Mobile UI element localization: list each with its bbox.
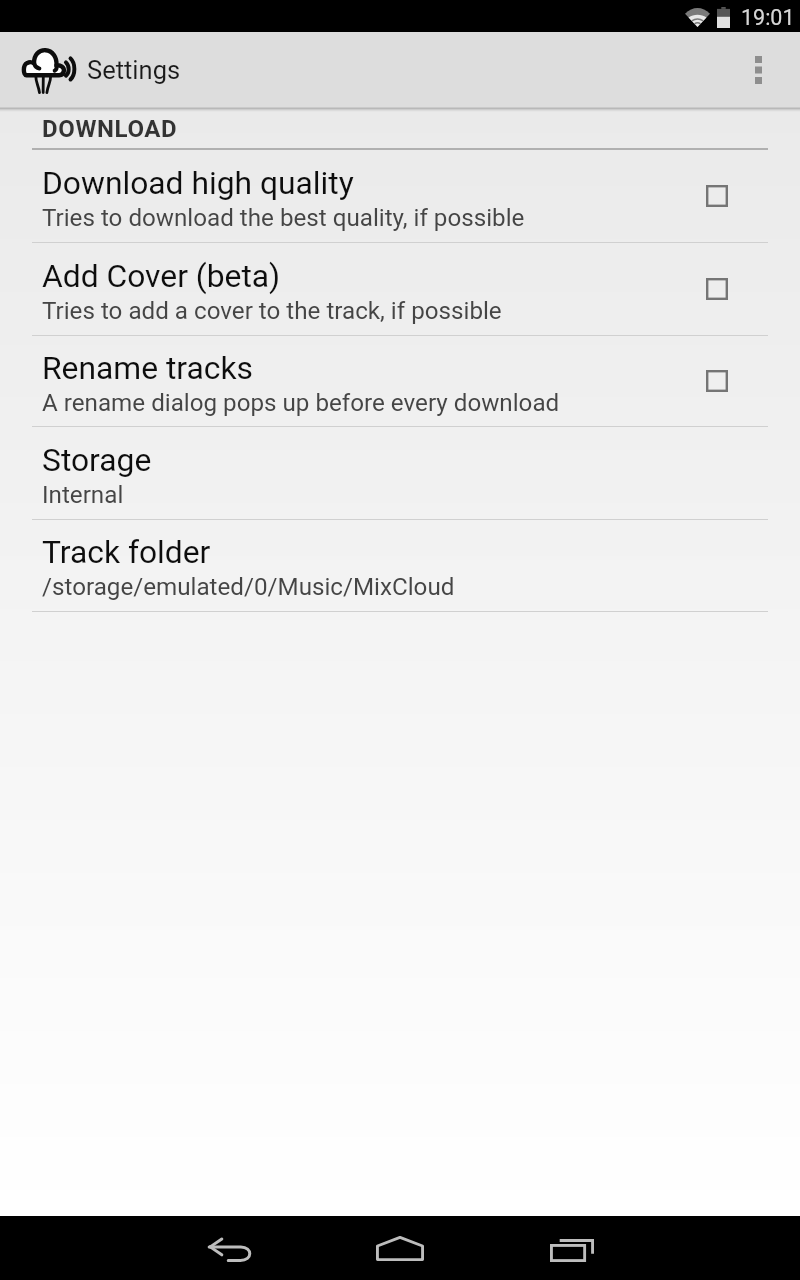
staticText: Tries to add a cover to the track, if po… [42, 297, 502, 325]
button[interactable]: Download high quality [0, 150, 800, 242]
staticText: /storage/emulated/0/Music/MixCloud [42, 573, 455, 601]
button[interactable]: Home [314, 1216, 486, 1280]
staticText: DOWNLOAD [42, 115, 178, 143]
staticText: Download high quality [42, 164, 354, 201]
staticText: Add Cover (beta) [42, 257, 281, 294]
staticText: 19:01 [741, 5, 795, 30]
staticText: Settings [87, 55, 181, 85]
button[interactable]: Track folder [0, 520, 800, 611]
button[interactable]: Recent apps [486, 1216, 658, 1280]
staticText: Rename tracks [42, 349, 253, 386]
staticText: Track folder [42, 533, 211, 570]
staticText: Tries to download the best quality, if p… [42, 204, 525, 232]
button[interactable]: Add Cover (beta) [0, 243, 800, 335]
staticText: A rename dialog pops up before every dow… [42, 389, 560, 417]
button[interactable]: Back [142, 1216, 314, 1280]
button[interactable]: More options [730, 32, 786, 107]
staticText: Internal [42, 481, 124, 509]
staticText: Storage [42, 441, 152, 478]
button[interactable]: Rename tracks [0, 336, 800, 426]
button[interactable]: Storage [0, 427, 800, 519]
